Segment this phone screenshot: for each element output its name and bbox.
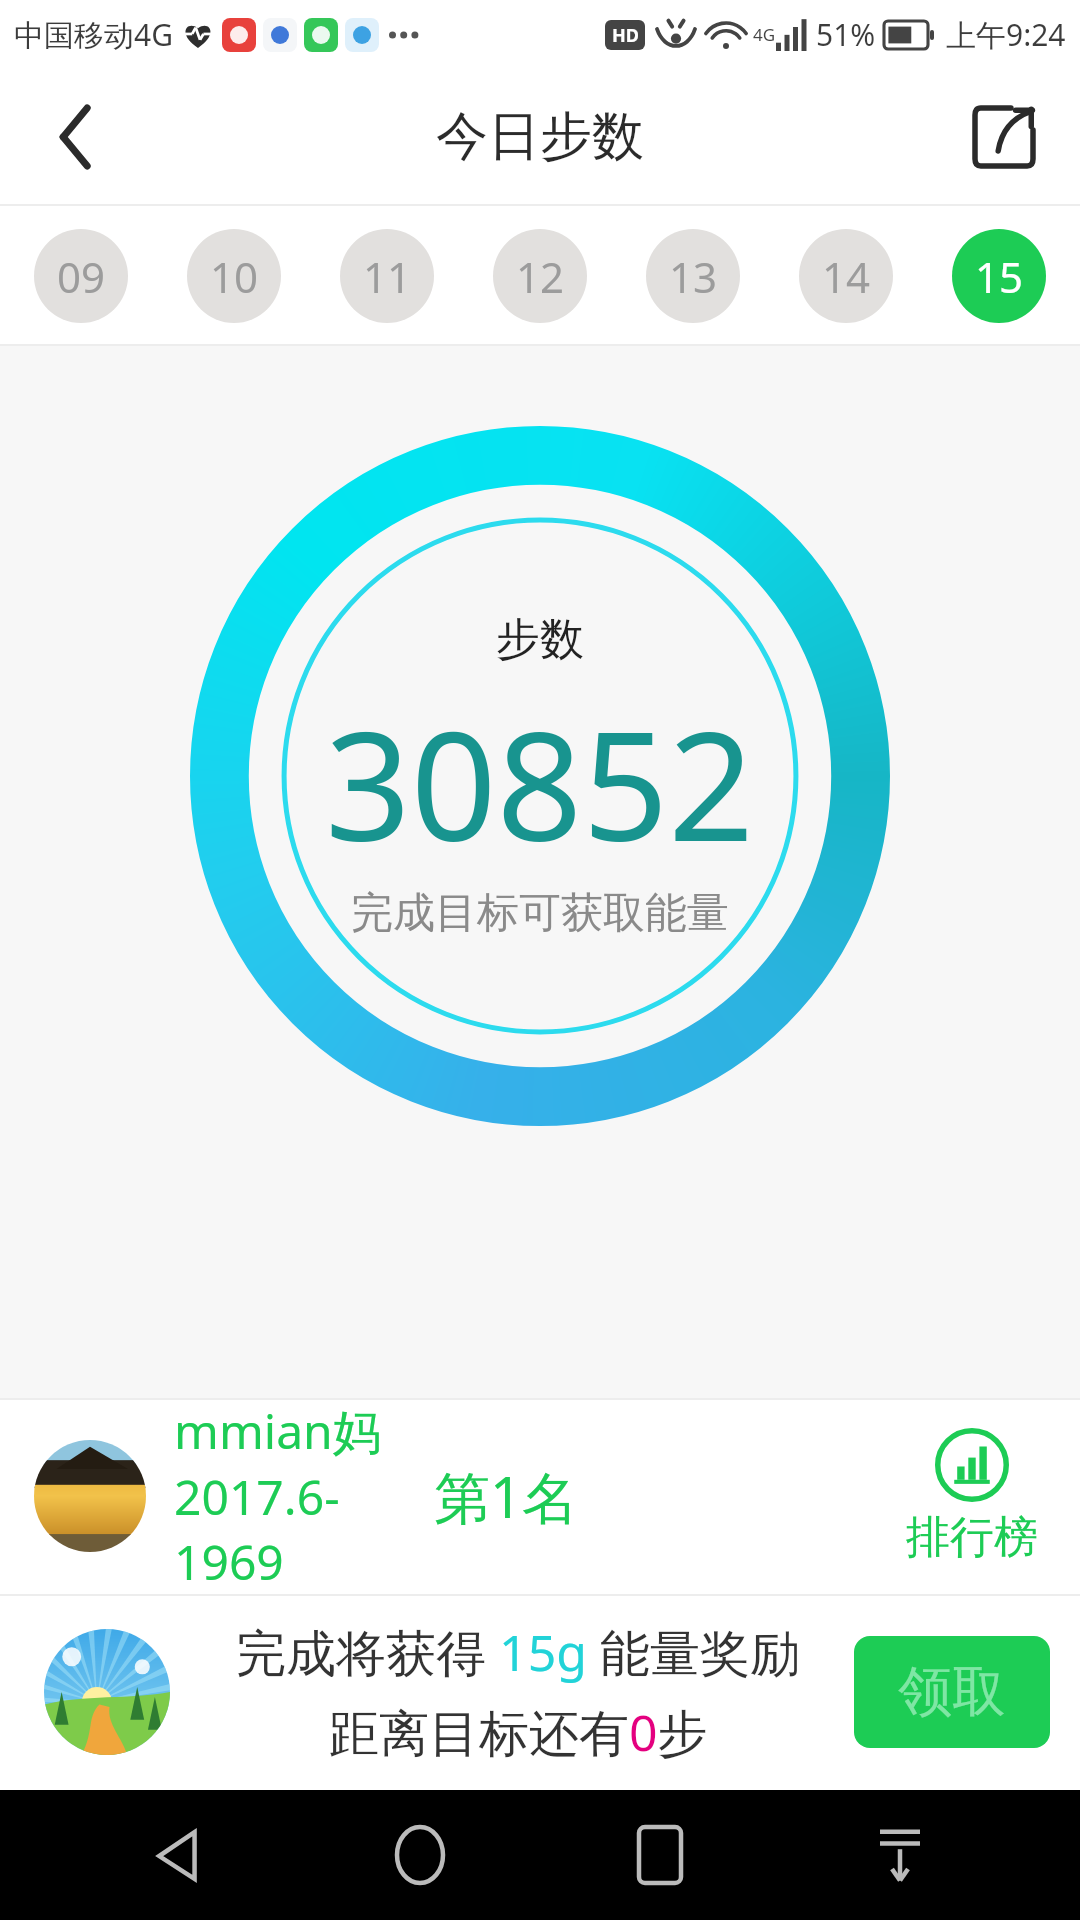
button[interactable]: Back [34, 95, 118, 179]
button[interactable]: Share [962, 95, 1046, 179]
staticText: 排行榜 [906, 1510, 1038, 1565]
staticText: 15 [975, 248, 1024, 305]
staticText: 今日步数 [436, 104, 644, 170]
button[interactable]: 10 [187, 229, 281, 323]
staticText: 第1名 [434, 1458, 579, 1534]
staticText: 30852 [325, 681, 755, 885]
button[interactable]: Hide navigation bar [840, 1795, 960, 1915]
staticText: 4G [753, 23, 776, 46]
staticText: 领取 [898, 1658, 1006, 1726]
button[interactable]: Back [120, 1795, 240, 1915]
staticText: 距离目标还有0步 [329, 1698, 708, 1766]
button[interactable]: 13 [646, 229, 740, 323]
staticText: 中国移动4G [14, 14, 173, 55]
button[interactable]: 12 [493, 229, 587, 323]
staticText: 上午9:24 [946, 14, 1066, 55]
button[interactable]: 14 [799, 229, 893, 323]
staticText: 10 [210, 248, 259, 305]
button[interactable]: Recents [600, 1795, 720, 1915]
button[interactable]: 排行榜 [898, 1428, 1046, 1565]
button[interactable]: 11 [340, 229, 434, 323]
button[interactable]: 15 [952, 229, 1046, 323]
staticText: 09 [57, 248, 106, 305]
staticText: 13 [669, 248, 718, 305]
staticText: 完成将获得 15g 能量奖励 [236, 1618, 800, 1686]
staticText: 1969 [174, 1529, 284, 1594]
button[interactable]: 09 [34, 229, 128, 323]
button[interactable]: 领取 [854, 1636, 1050, 1748]
staticText: 11 [363, 248, 412, 305]
button[interactable]: Home [360, 1795, 480, 1915]
staticText: 14 [822, 248, 871, 305]
staticText: 51% [816, 14, 876, 55]
staticText: HD [612, 23, 639, 48]
staticText: 2017.6- [174, 1464, 340, 1529]
staticText: 12 [516, 248, 565, 305]
staticText: 完成目标可获取能量 [351, 887, 729, 940]
staticText: 步数 [496, 612, 584, 667]
staticText: mmian妈 [174, 1398, 381, 1464]
